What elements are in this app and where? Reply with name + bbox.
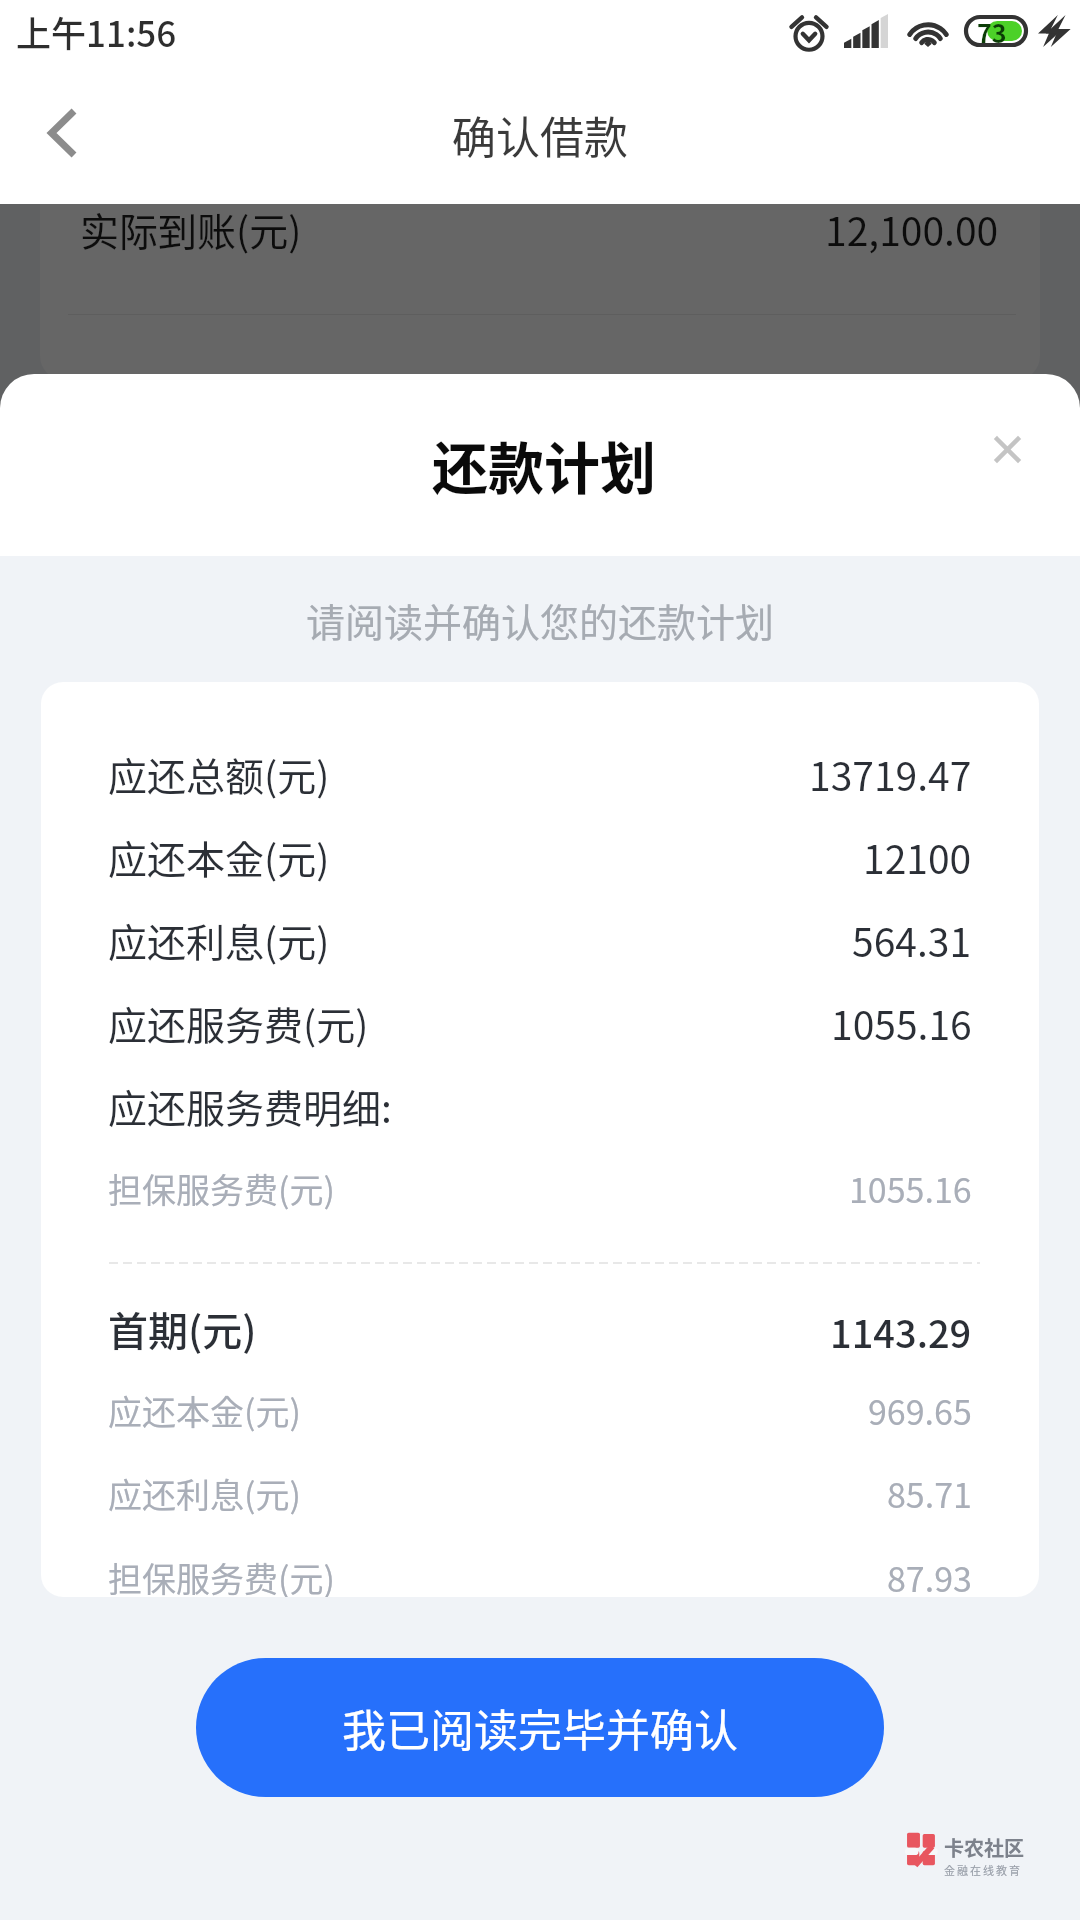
button[interactable]: 关闭 [971,413,1043,485]
staticText: 担保服务费(元) [108,1553,335,1597]
staticText: 上午11:56 [16,6,177,57]
staticText: 85.71 [887,1469,972,1518]
staticText: 1143.29 [830,1304,972,1359]
staticText: 969.65 [868,1386,972,1435]
staticText: 请阅读并确认您的还款计划 [0,592,1080,648]
staticText: 应还服务费明细: [108,1078,392,1134]
staticText: 实际到账(元) [80,201,302,257]
staticText: 确认借款 [452,103,628,167]
staticText: 1055.16 [831,995,972,1051]
staticText: 564.31 [852,912,972,968]
button[interactable]: 返回 [6,78,116,188]
staticText: 13719.47 [809,746,972,802]
staticText: 应还利息(元) [108,1469,301,1518]
staticText: 应还服务费(元) [108,995,369,1051]
staticText: 应还本金(元) [108,829,330,885]
staticText: 卡农社区 [944,1833,1024,1862]
staticText: 担保服务费(元) [108,1164,335,1213]
staticText: 我已阅读完毕并确认 [342,1696,738,1760]
staticText: 12,100.00 [825,201,999,257]
staticText: 首期(元) [108,1300,257,1358]
staticText: 73 [977,14,1007,46]
staticText: 还款计划 [432,424,656,505]
staticText: 应还利息(元) [108,912,330,968]
staticText: 1055.16 [849,1164,972,1213]
staticText: 87.93 [887,1553,972,1597]
staticText: 金融在线教育 [944,1862,1022,1878]
staticText: 12100 [863,829,972,885]
button[interactable]: 我已阅读完毕并确认 [196,1658,884,1797]
staticText: 应还总额(元) [108,746,330,802]
staticText: 应还本金(元) [108,1386,301,1435]
